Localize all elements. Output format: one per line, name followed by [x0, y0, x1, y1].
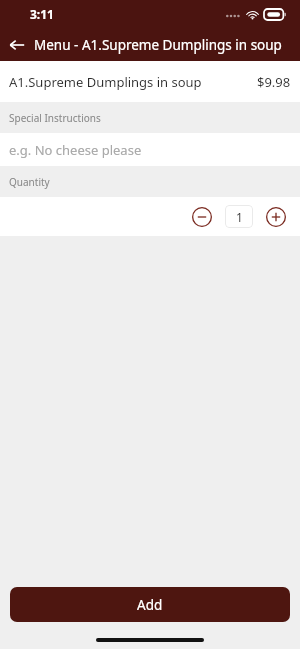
button[interactable]: 1 — [225, 205, 253, 228]
staticText: A1.Supreme Dumplings in soup — [9, 73, 257, 91]
staticText: e.g. No cheese please — [9, 141, 142, 159]
button[interactable]: A1.Supreme Dumplings in soup — [0, 61, 300, 102]
button[interactable]: Increase quantity — [266, 207, 286, 227]
staticText: Quantity — [9, 175, 50, 189]
staticText: Special Instructions — [9, 111, 101, 125]
staticText: Add — [137, 596, 163, 614]
staticText: 3:11 — [30, 6, 54, 22]
staticText: 1 — [236, 209, 243, 225]
staticText: Menu - A1.Supreme Dumplings in soup — [34, 36, 282, 54]
button[interactable]: Add — [10, 587, 290, 622]
button[interactable]: e.g. No cheese please — [0, 133, 300, 166]
staticText: $9.98 — [257, 73, 291, 91]
button[interactable]: Back — [0, 28, 34, 61]
button[interactable]: Decrease quantity — [192, 207, 212, 227]
